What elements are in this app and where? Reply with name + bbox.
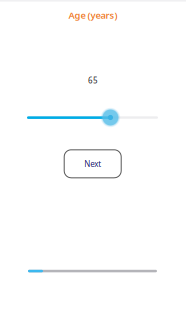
staticText: 65 bbox=[88, 75, 98, 86]
staticText: Next bbox=[84, 158, 101, 169]
staticText: Age (years) bbox=[68, 9, 117, 21]
button[interactable]: Next bbox=[64, 150, 121, 178]
